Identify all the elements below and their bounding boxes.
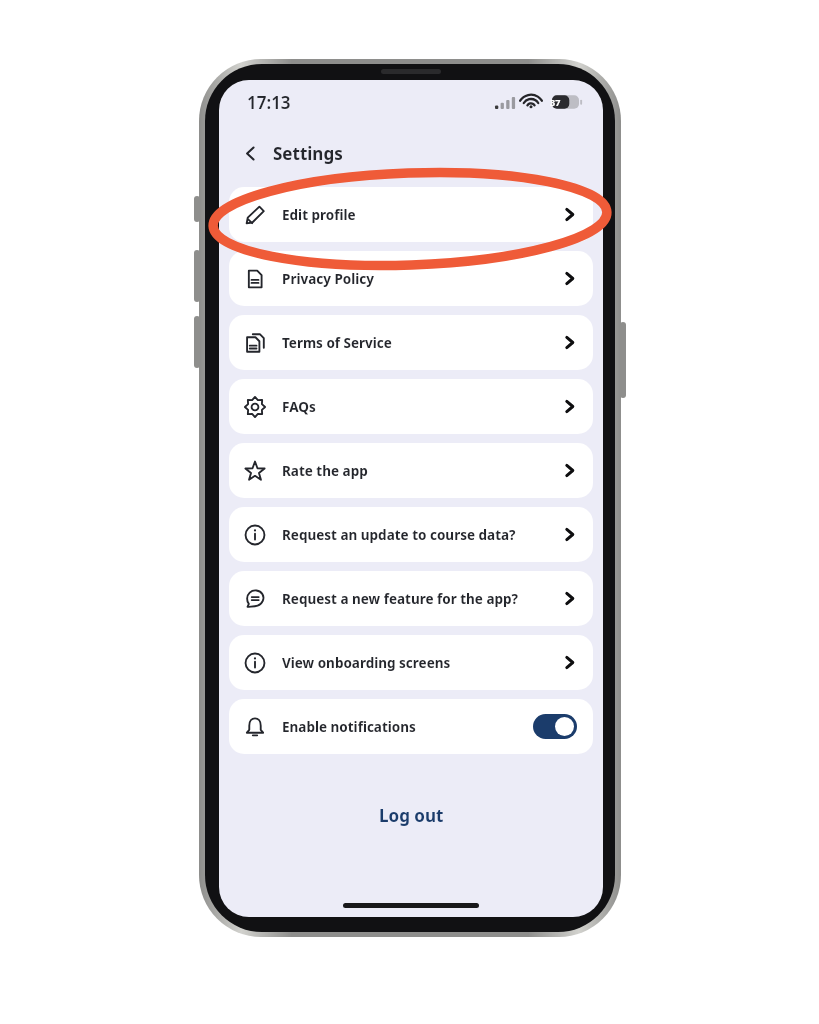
button[interactable]: Edit profile [229,187,593,242]
staticText: 17:13 [247,91,291,114]
button[interactable]: Log out [219,798,603,832]
button[interactable]: Privacy Policy [229,251,593,306]
staticText: Rate the app [282,462,562,480]
button[interactable]: Request a new feature for the app? [229,571,593,626]
button[interactable]: Enable notifications [229,699,593,754]
staticText: Edit profile [282,206,562,224]
staticText: Terms of Service [282,334,562,352]
button[interactable]: Terms of Service [229,315,593,370]
staticText: Settings [273,142,343,165]
staticText: FAQs [282,398,562,416]
staticText: View onboarding screens [282,654,562,672]
staticText: Request a new feature for the app? [282,590,562,608]
button[interactable]: FAQs [229,379,593,434]
staticText: Request an update to course data? [282,526,562,544]
staticText: Log out [379,804,444,827]
button[interactable]: Rate the app [229,443,593,498]
button[interactable]: View onboarding screens [229,635,593,690]
button[interactable]: Toggle notifications [533,714,577,739]
button[interactable]: Request an update to course data? [229,507,593,562]
staticText: 37 [550,96,561,108]
button[interactable]: Back [235,138,265,168]
staticText: Enable notifications [282,718,533,736]
staticText: Privacy Policy [282,270,562,288]
